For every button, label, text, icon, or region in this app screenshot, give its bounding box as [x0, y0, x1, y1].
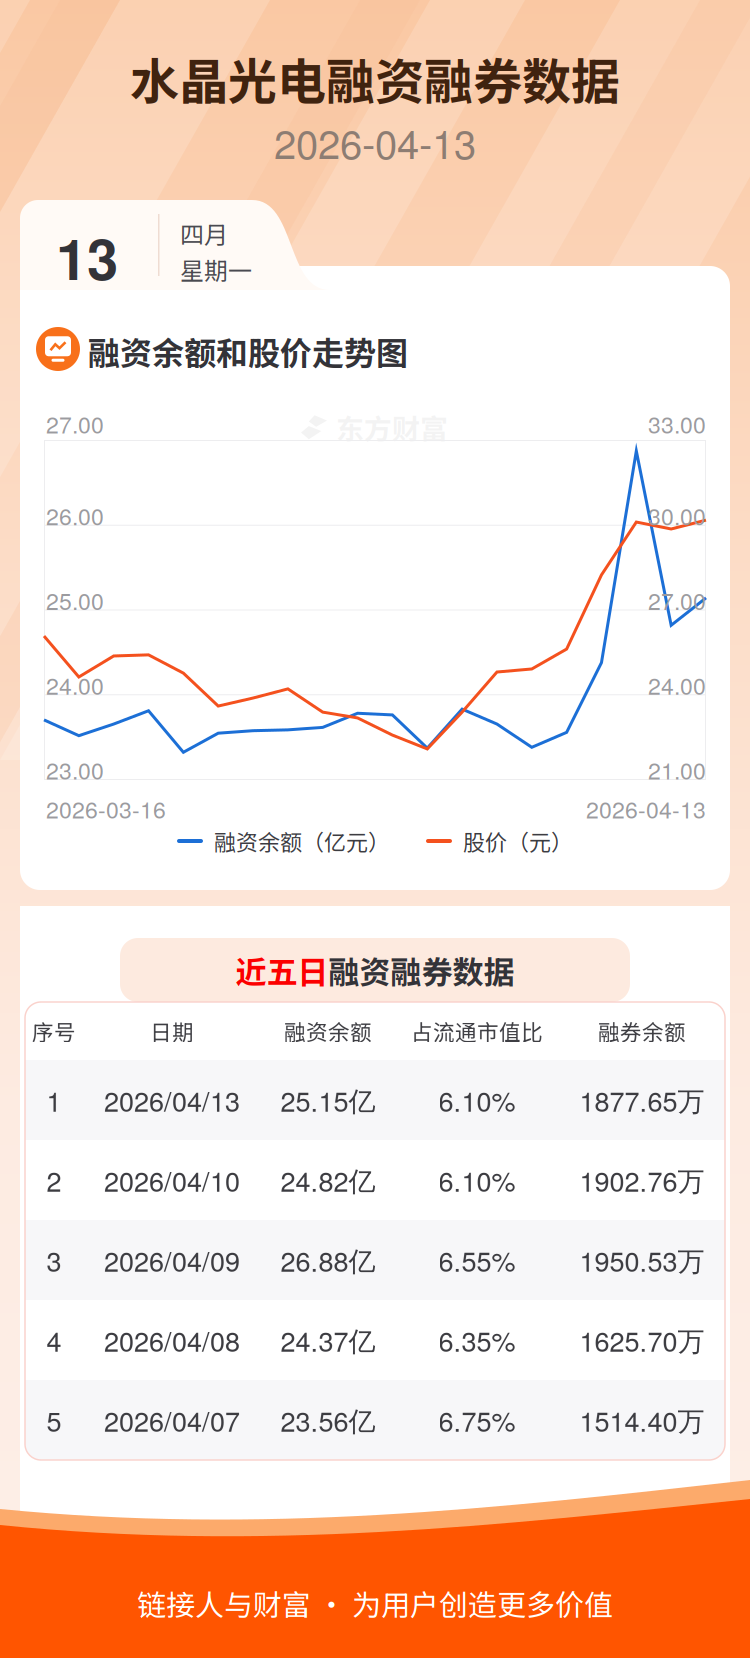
staticText: 24.00: [648, 668, 706, 701]
staticText: 融资融券数据: [328, 948, 514, 992]
staticText: 5: [46, 1401, 61, 1439]
staticText: 2026-04-13: [274, 113, 476, 170]
staticText: 2026/04/10: [104, 1161, 240, 1199]
staticText: 6.10%: [438, 1161, 515, 1199]
staticText: 日期: [150, 1015, 194, 1046]
staticText: 融资余额（亿元）: [214, 825, 390, 857]
staticText: 1877.65万: [579, 1081, 704, 1119]
staticText: 链接人与财富 · 为用户创造更多价值: [137, 1582, 613, 1624]
staticText: 26.00: [46, 499, 104, 532]
staticText: 2: [46, 1161, 61, 1199]
staticText: 25.15亿: [280, 1081, 375, 1119]
staticText: 1: [46, 1081, 61, 1119]
staticText: 24.37亿: [280, 1321, 375, 1359]
staticText: 3: [46, 1241, 61, 1279]
staticText: 23.00: [46, 753, 104, 786]
staticText: 1902.76万: [579, 1161, 704, 1199]
staticText: 2026/04/07: [104, 1401, 240, 1439]
staticText: 1625.70万: [579, 1321, 704, 1359]
staticText: 近五日: [235, 948, 328, 992]
staticText: 序号: [32, 1015, 76, 1046]
staticText: 23.56亿: [280, 1401, 375, 1439]
staticText: 4: [46, 1321, 61, 1359]
staticText: 6.75%: [438, 1401, 515, 1439]
staticText: 6.55%: [438, 1241, 515, 1279]
staticText: 2026-04-13: [586, 792, 706, 825]
staticText: 25.00: [46, 583, 104, 616]
staticText: 27.00: [648, 583, 706, 616]
staticText: 2026-03-16: [46, 792, 166, 825]
staticText: 6.10%: [438, 1081, 515, 1119]
staticText: 24.00: [46, 668, 104, 701]
staticText: 水晶光电融资融券数据: [130, 43, 620, 114]
staticText: 占流通市值比: [411, 1015, 543, 1046]
staticText: 融券余额: [598, 1015, 686, 1046]
staticText: 21.00: [648, 753, 706, 786]
staticText: 融资余额和股价走势图: [88, 328, 408, 374]
staticText: 东方财富: [336, 407, 448, 447]
staticText: 1514.40万: [579, 1401, 704, 1439]
staticText: 30.00: [648, 499, 706, 532]
staticText: 星期一: [180, 252, 252, 287]
staticText: 26.88亿: [280, 1241, 375, 1279]
staticText: 融资余额: [284, 1015, 372, 1046]
staticText: 2026/04/09: [104, 1241, 240, 1279]
staticText: 四月: [180, 216, 228, 251]
staticText: 1950.53万: [579, 1241, 704, 1279]
staticText: 6.35%: [438, 1321, 515, 1359]
staticText: 2026/04/08: [104, 1321, 240, 1359]
staticText: 27.00: [46, 407, 104, 440]
staticText: 2026/04/13: [104, 1081, 240, 1119]
staticText: 24.82亿: [280, 1161, 375, 1199]
staticText: 股价（元）: [463, 825, 573, 857]
staticText: 13: [56, 217, 118, 297]
staticText: 33.00: [648, 407, 706, 440]
